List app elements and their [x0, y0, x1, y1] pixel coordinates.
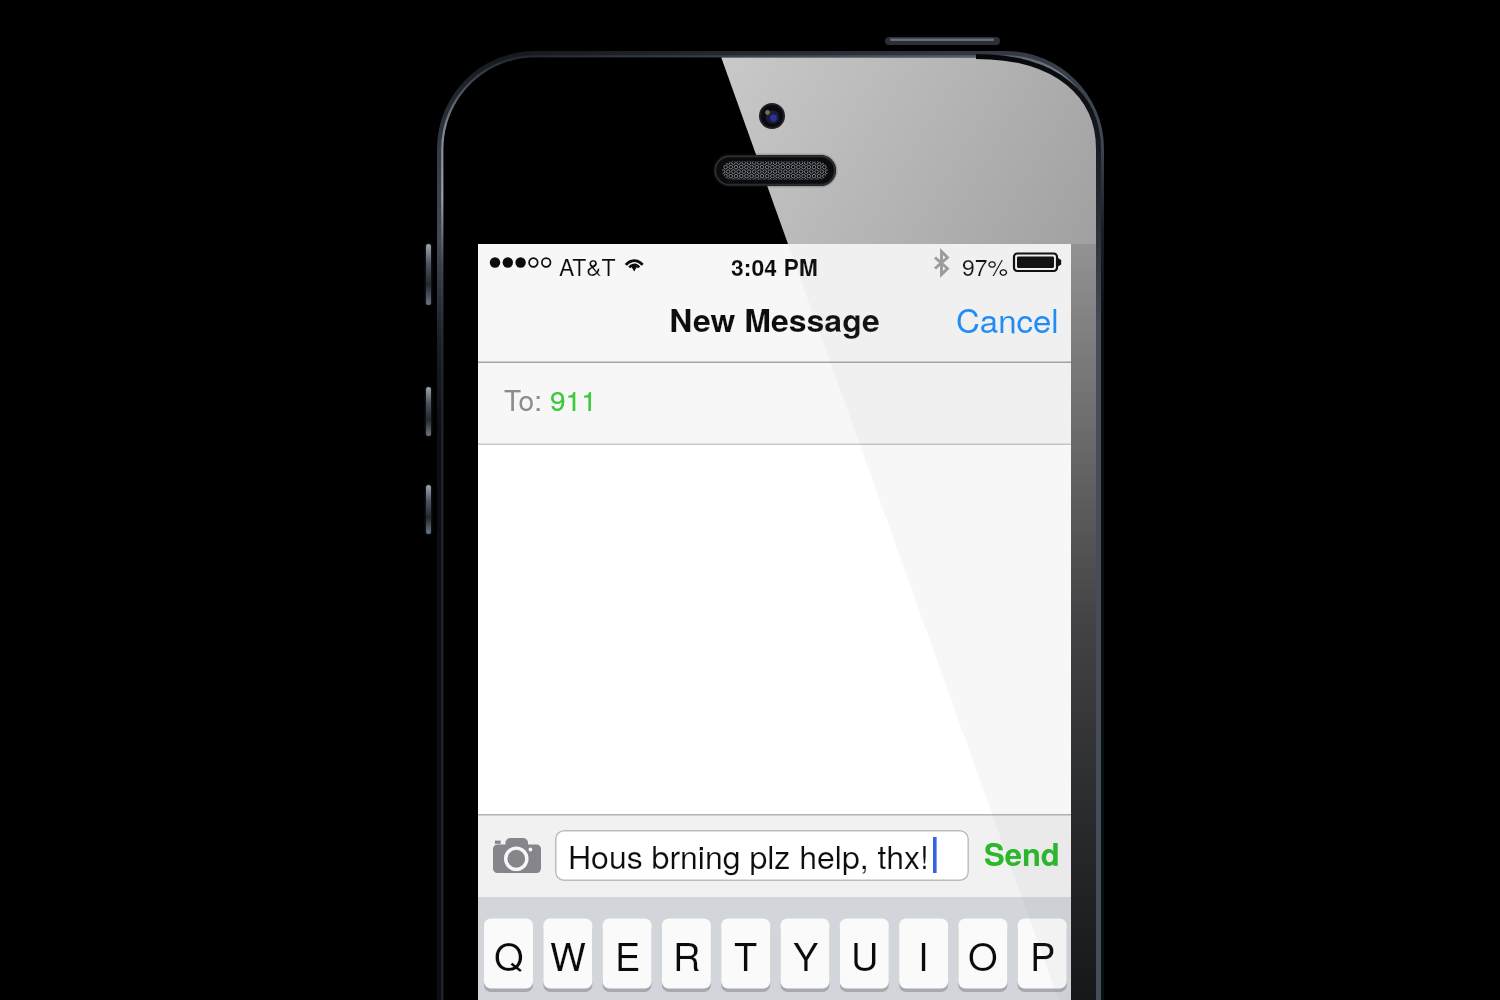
staticText: New Message — [478, 296, 1071, 376]
staticText: Y — [793, 927, 819, 981]
button[interactable]: Y — [781, 919, 830, 989]
staticText: Hous brning plz help, thx! — [568, 832, 929, 878]
button[interactable]: R — [662, 919, 711, 989]
button[interactable]: U — [840, 919, 889, 989]
button[interactable]: Hous brning plz help, thx! — [555, 830, 969, 881]
staticText: 97% — [962, 250, 1009, 283]
staticText: U — [851, 927, 879, 981]
button[interactable]: T — [721, 919, 770, 989]
staticText: To: — [504, 379, 550, 419]
staticText: R — [673, 927, 701, 981]
button[interactable]: P — [1018, 919, 1067, 989]
staticText: W — [550, 927, 586, 981]
staticText: I — [918, 927, 929, 981]
staticText: E — [615, 927, 641, 981]
button[interactable]: Take photo — [493, 838, 541, 873]
button[interactable]: To: — [478, 363, 1071, 445]
staticText: O — [968, 927, 998, 981]
button[interactable]: Q — [484, 919, 533, 989]
staticText: Cancel — [956, 295, 1059, 342]
staticText: AT&T — [559, 250, 616, 283]
button[interactable]: E — [603, 919, 652, 989]
staticText: 911 — [550, 379, 597, 419]
button[interactable]: Cancel — [947, 292, 1071, 344]
staticText: 3:04 PM — [478, 250, 1071, 289]
button[interactable]: I — [899, 919, 948, 989]
staticText: P — [1030, 927, 1056, 981]
button[interactable]: O — [958, 919, 1007, 989]
staticText: Send — [984, 831, 1060, 875]
button[interactable]: W — [543, 919, 592, 989]
staticText: T — [734, 927, 758, 981]
button[interactable]: Send — [973, 826, 1071, 886]
staticText: Q — [494, 927, 524, 981]
